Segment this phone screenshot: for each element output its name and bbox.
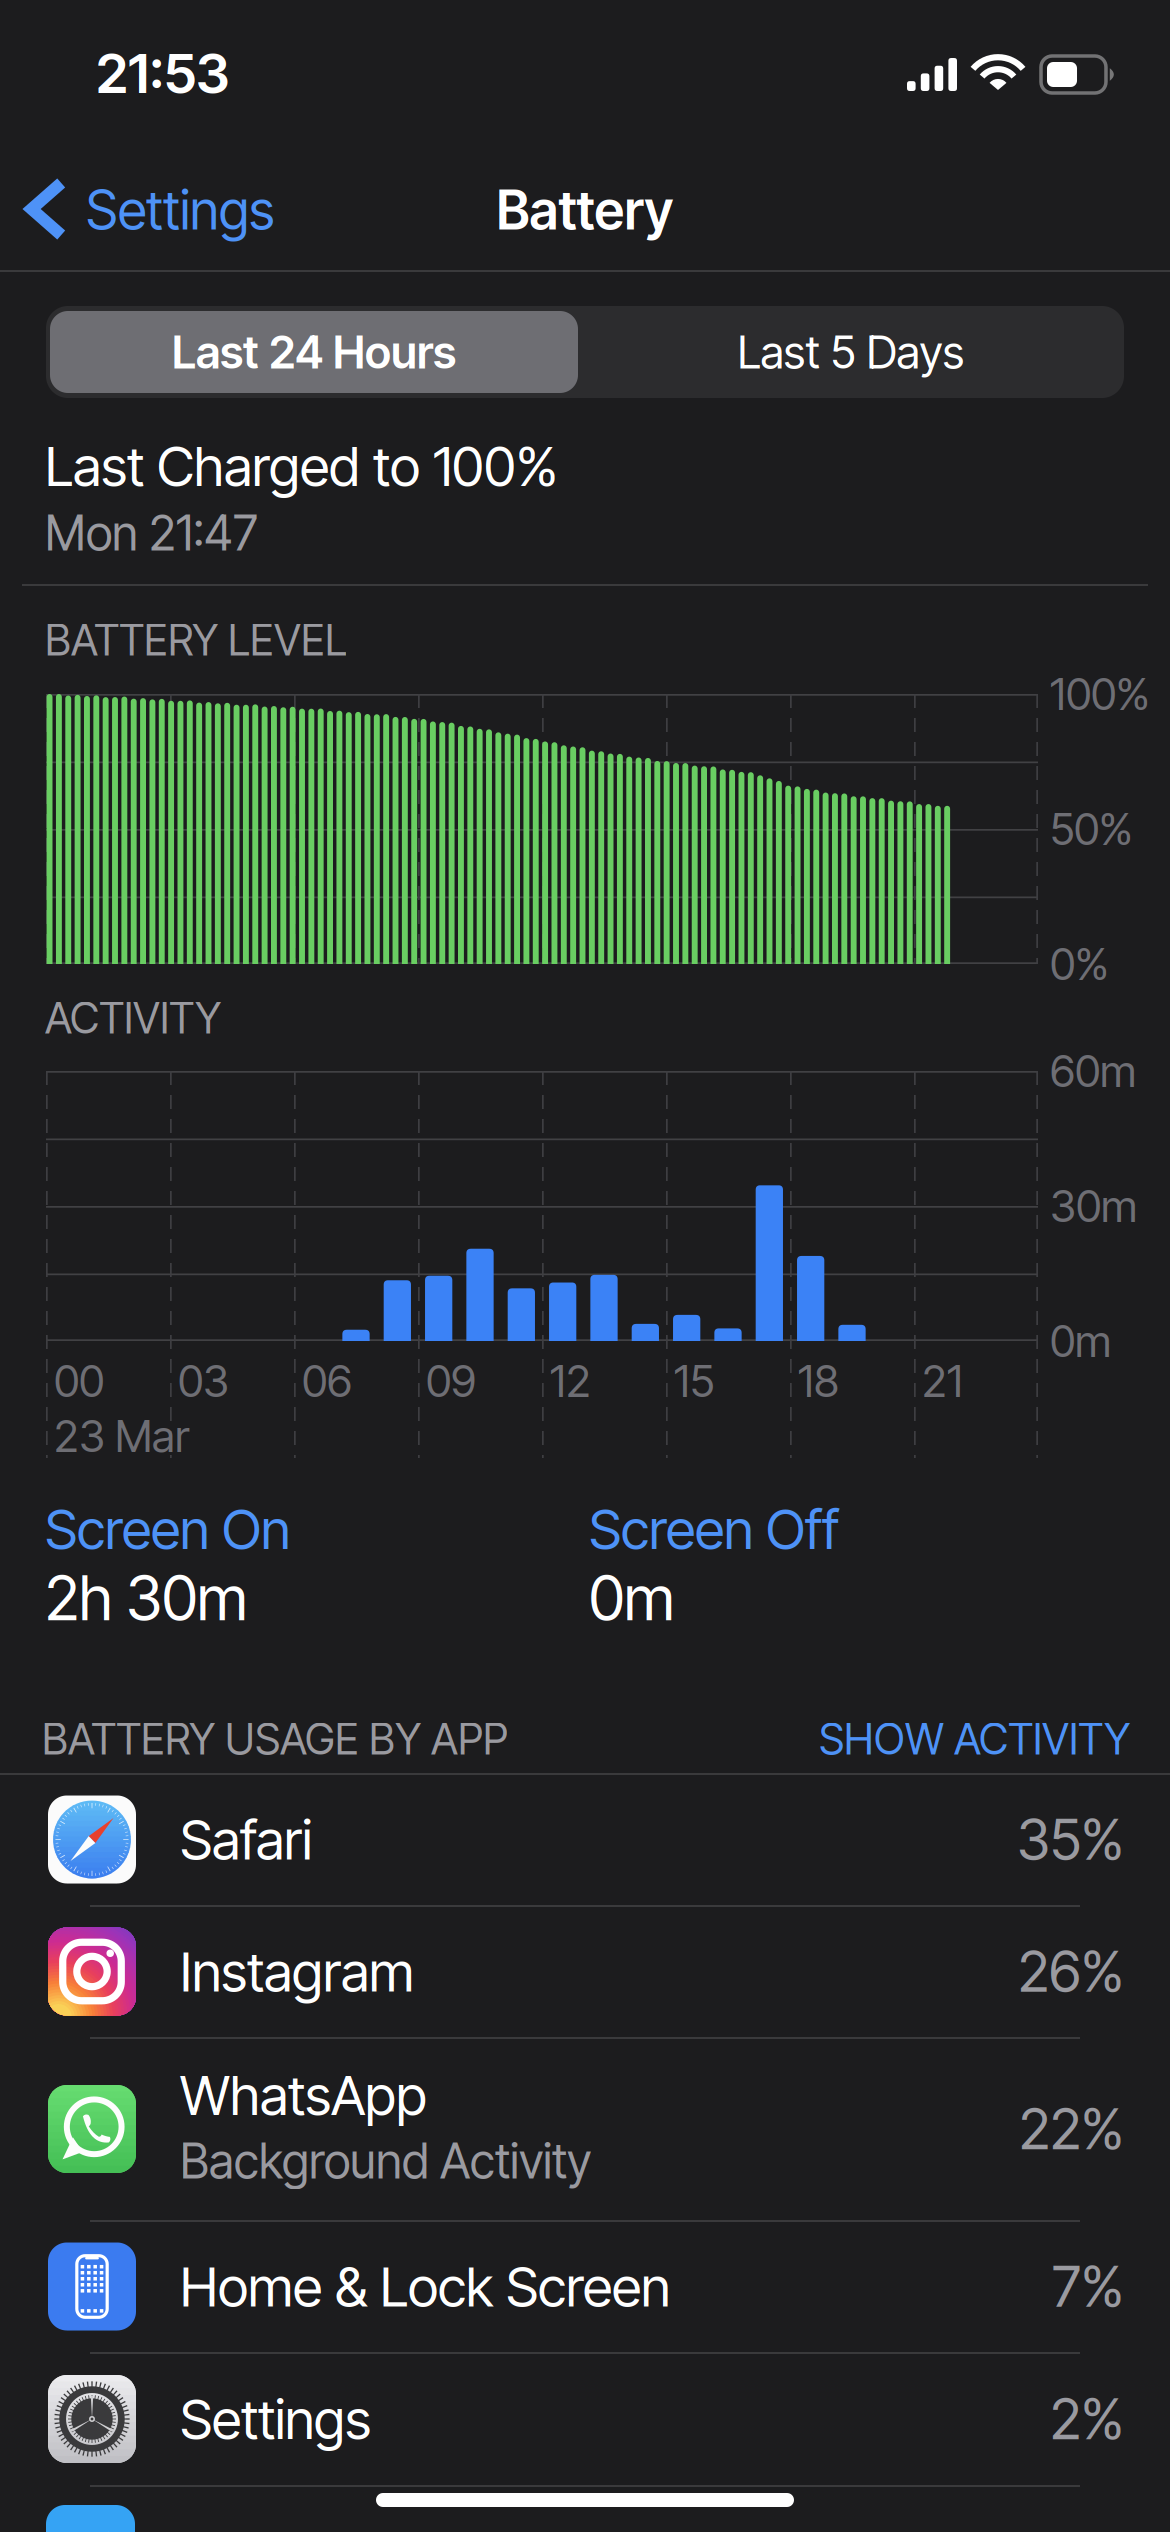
staticText: 2% xyxy=(1050,2385,1124,2453)
staticText: 0% xyxy=(1050,937,1109,991)
staticText: 21 xyxy=(922,1354,963,1408)
button[interactable]: Instagram xyxy=(0,1906,1170,2037)
staticText: 00 xyxy=(54,1354,104,1408)
button[interactable]: WhatsApp xyxy=(0,2038,1170,2220)
staticText: 12 xyxy=(550,1354,591,1408)
staticText: 03 xyxy=(178,1354,229,1408)
button[interactable]: Home & Lock Screen xyxy=(0,2221,1170,2352)
staticText: Instagram xyxy=(180,1938,414,2004)
staticText: BATTERY USAGE BY APP xyxy=(42,1713,508,1765)
staticText: 18 xyxy=(798,1354,839,1408)
staticText: Mon 21:47 xyxy=(45,504,258,562)
staticText: Last 24 Hours xyxy=(172,325,456,379)
staticText: 0m xyxy=(1050,1314,1111,1368)
staticText: Battery xyxy=(496,178,673,242)
staticText: Safari xyxy=(180,1806,312,1872)
button[interactable]: Screen Off xyxy=(589,1500,1029,1558)
staticText: Background Activity xyxy=(180,2132,591,2190)
staticText: WhatsApp xyxy=(180,2062,427,2128)
staticText: Last Charged to 100% xyxy=(45,433,558,499)
staticText: Settings xyxy=(180,2386,371,2452)
button[interactable]: Safari xyxy=(0,1774,1170,1905)
staticText: 30m xyxy=(1050,1179,1137,1233)
staticText: Screen On xyxy=(45,1496,290,1562)
staticText: 7% xyxy=(1052,2253,1124,2320)
button[interactable]: Last 24 Hours xyxy=(50,311,578,393)
staticText: 2h 30m xyxy=(45,1561,247,1635)
staticText: 50% xyxy=(1050,802,1133,856)
staticText: BATTERY LEVEL xyxy=(45,614,347,666)
staticText: 26% xyxy=(1018,1938,1124,2005)
button[interactable]: Screen On xyxy=(45,1500,485,1558)
staticText: Last 5 Days xyxy=(737,325,964,379)
staticText: 21:53 xyxy=(96,40,230,106)
staticText: 06 xyxy=(302,1354,352,1408)
button[interactable]: Settings xyxy=(0,140,320,270)
staticText: 100% xyxy=(1050,667,1150,721)
staticText: ACTIVITY xyxy=(45,992,221,1044)
staticText: 15 xyxy=(674,1354,714,1408)
button[interactable]: Last 5 Days xyxy=(584,311,1118,393)
staticText: 22% xyxy=(1019,2095,1124,2163)
staticText: Home & Lock Screen xyxy=(180,2253,670,2319)
staticText: Settings xyxy=(86,178,274,242)
staticText: Screen Off xyxy=(589,1496,839,1562)
staticText: 23 Mar xyxy=(54,1409,189,1463)
staticText: 0m xyxy=(589,1561,674,1635)
button[interactable]: Settings xyxy=(0,2353,1170,2485)
button[interactable]: SHOW ACTIVITY xyxy=(630,1715,1130,1763)
staticText: 60m xyxy=(1050,1044,1136,1098)
staticText: 09 xyxy=(426,1354,476,1408)
staticText: SHOW ACTIVITY xyxy=(819,1713,1130,1765)
staticText: 35% xyxy=(1017,1806,1124,1873)
